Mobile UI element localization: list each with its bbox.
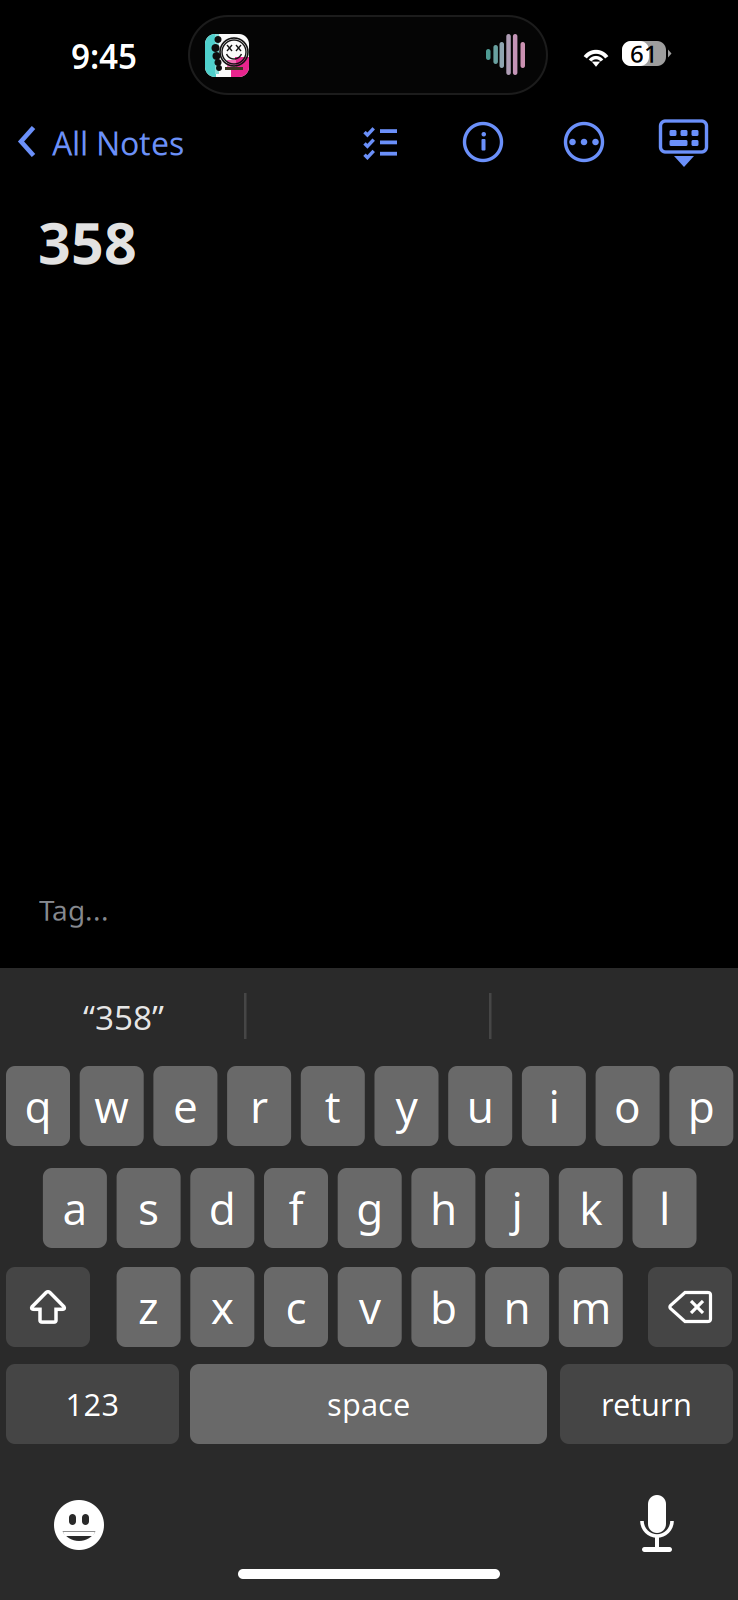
staticText: p bbox=[688, 1077, 715, 1135]
button[interactable]: Delete bbox=[648, 1267, 732, 1347]
staticText: g bbox=[356, 1179, 383, 1237]
staticText: z bbox=[138, 1278, 159, 1336]
staticText: return bbox=[601, 1384, 692, 1424]
button[interactable]: Emoji Keyboard bbox=[54, 1500, 104, 1550]
staticText: h bbox=[430, 1179, 457, 1237]
button[interactable]: q bbox=[6, 1066, 70, 1146]
button[interactable]: v bbox=[338, 1267, 402, 1347]
staticText: w bbox=[94, 1077, 129, 1135]
button[interactable]: All Notes bbox=[8, 111, 208, 173]
button[interactable]: b bbox=[411, 1267, 475, 1347]
staticText: n bbox=[504, 1278, 531, 1336]
button[interactable]: l bbox=[632, 1168, 696, 1248]
staticText: x bbox=[211, 1278, 234, 1336]
button[interactable]: Note Info bbox=[462, 121, 503, 162]
staticText: 358 bbox=[38, 204, 137, 280]
staticText: d bbox=[209, 1179, 236, 1237]
staticText: o bbox=[614, 1077, 641, 1135]
staticText: a bbox=[62, 1179, 87, 1237]
staticText: b bbox=[430, 1278, 457, 1336]
staticText: All Notes bbox=[52, 122, 184, 164]
button[interactable]: s bbox=[117, 1168, 181, 1248]
staticText: Tag... bbox=[39, 891, 109, 929]
button[interactable]: Hide Keyboard bbox=[660, 121, 707, 167]
button[interactable]: w bbox=[80, 1066, 144, 1146]
button[interactable]: a bbox=[43, 1168, 107, 1248]
staticText: e bbox=[173, 1077, 198, 1135]
staticText: r bbox=[250, 1077, 268, 1135]
staticText: 9:45 bbox=[71, 34, 137, 78]
button[interactable]: return bbox=[560, 1364, 733, 1444]
staticText: k bbox=[579, 1179, 602, 1237]
button[interactable]: r bbox=[227, 1066, 291, 1146]
button[interactable]: Checklist bbox=[363, 127, 398, 156]
staticText: 123 bbox=[65, 1384, 119, 1424]
staticText: m bbox=[570, 1278, 611, 1336]
staticText: u bbox=[467, 1077, 494, 1135]
button[interactable]: Shift bbox=[6, 1267, 90, 1347]
button[interactable]: More Options bbox=[563, 121, 604, 162]
button[interactable]: Dictate bbox=[635, 1495, 679, 1555]
button[interactable]: j bbox=[485, 1168, 549, 1248]
button[interactable]: d bbox=[190, 1168, 254, 1248]
button[interactable]: z bbox=[117, 1267, 181, 1347]
button[interactable]: y bbox=[374, 1066, 438, 1146]
button[interactable]: x bbox=[190, 1267, 254, 1347]
button[interactable]: t bbox=[301, 1066, 365, 1146]
staticText: s bbox=[138, 1179, 159, 1237]
button[interactable]: k bbox=[559, 1168, 623, 1248]
button[interactable]: e bbox=[153, 1066, 217, 1146]
staticText: q bbox=[24, 1077, 51, 1135]
button[interactable]: o bbox=[596, 1066, 660, 1146]
staticText: l bbox=[659, 1179, 670, 1237]
button[interactable]: f bbox=[264, 1168, 328, 1248]
button[interactable]: p bbox=[669, 1066, 733, 1146]
staticText: v bbox=[359, 1278, 381, 1336]
button[interactable]: g bbox=[338, 1168, 402, 1248]
staticText: 61 bbox=[630, 38, 658, 69]
button[interactable]: m bbox=[559, 1267, 623, 1347]
staticText: space bbox=[327, 1384, 410, 1424]
button[interactable]: space bbox=[190, 1364, 547, 1444]
button[interactable]: i bbox=[522, 1066, 586, 1146]
button[interactable]: u bbox=[448, 1066, 512, 1146]
staticText: c bbox=[285, 1278, 306, 1336]
button[interactable]: n bbox=[485, 1267, 549, 1347]
staticText: t bbox=[325, 1077, 341, 1135]
button[interactable]: 123 bbox=[6, 1364, 179, 1444]
staticText: f bbox=[288, 1179, 303, 1237]
button[interactable]: h bbox=[411, 1168, 475, 1248]
staticText: “358” bbox=[83, 995, 164, 1039]
staticText: y bbox=[395, 1077, 417, 1135]
staticText: i bbox=[548, 1077, 559, 1135]
staticText: j bbox=[512, 1179, 523, 1237]
button[interactable]: c bbox=[264, 1267, 328, 1347]
